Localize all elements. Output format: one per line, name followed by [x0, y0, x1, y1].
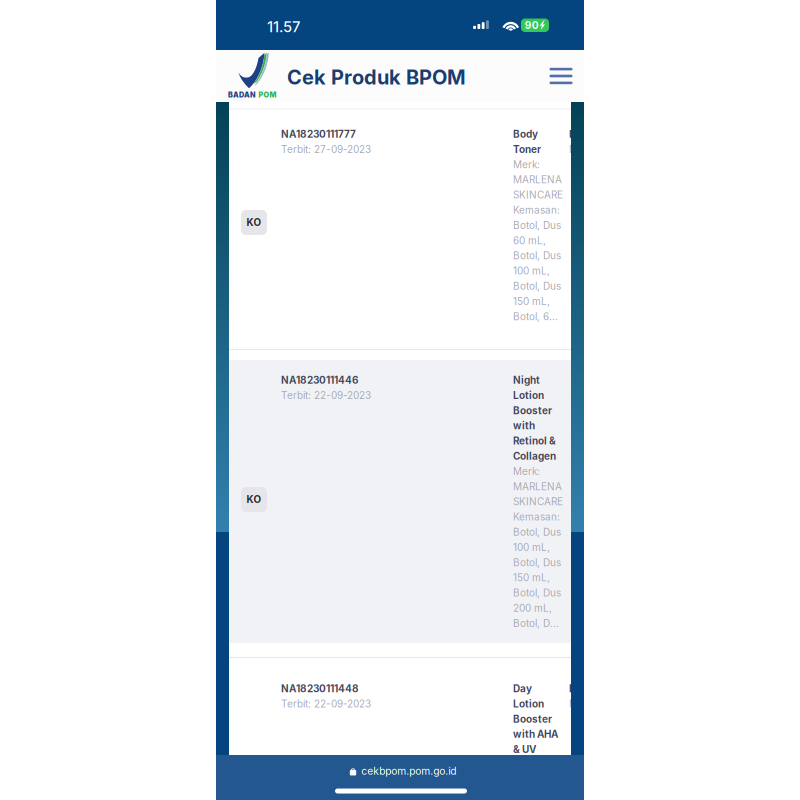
staticText: Kemasan: — [513, 204, 560, 216]
staticText: 200 mL, — [513, 602, 552, 614]
staticText: 150 mL, — [513, 572, 550, 584]
staticText: Retinol & — [513, 435, 556, 447]
staticText: Cek Produk BPOM — [287, 65, 466, 89]
staticText: NA18230111777 — [281, 128, 356, 140]
staticText: MARLENA — [513, 480, 562, 493]
staticText: Botol, Dus — [513, 219, 561, 231]
staticText: NA18230111446 — [281, 374, 358, 386]
staticText: 100 mL, — [513, 265, 550, 277]
staticText: MARLENA — [513, 174, 562, 186]
button[interactable]: Menu — [544, 61, 578, 91]
staticText: SKINCARE — [513, 496, 563, 508]
staticText: 60 mL, — [513, 234, 546, 247]
staticText: Lotion — [513, 698, 544, 710]
staticText: Botol, Dus — [513, 587, 561, 599]
staticText: Botol, 6... — [513, 310, 558, 323]
staticText: Collagen — [513, 450, 556, 462]
staticText: Bedak — [569, 683, 600, 695]
staticText: Botol, D... — [513, 617, 559, 629]
staticText: Terbit: 27-09-2023 — [281, 143, 371, 155]
staticText: BADAN — [228, 90, 256, 99]
staticText: Terbit: 22-09-2023 — [281, 698, 371, 710]
staticText: POM — [259, 90, 277, 99]
staticText: Merk: — [513, 465, 540, 477]
staticText: with AHA — [513, 728, 558, 740]
staticText: Merk: — [569, 698, 596, 710]
staticText: KO — [246, 216, 261, 228]
staticText: Merk: — [569, 143, 596, 155]
button[interactable]: cekbpom.pom.go.id — [347, 761, 459, 781]
staticText: KO — [246, 493, 261, 505]
staticText: Booster — [513, 713, 552, 725]
staticText: Botol, Dus — [513, 280, 561, 292]
staticText: Day — [513, 683, 532, 695]
staticText: 90 — [525, 19, 539, 31]
staticText: Kemasan: — [513, 511, 560, 523]
staticText: Botol, Dus — [513, 250, 561, 262]
staticText: Botol, Dus — [513, 526, 561, 538]
staticText: 100 mL, — [513, 541, 550, 553]
staticText: Toner — [513, 143, 541, 155]
staticText: 150 mL, — [513, 295, 550, 307]
staticText: & UV — [513, 743, 536, 755]
staticText: 11.57 — [267, 18, 300, 36]
staticText: SKINCARE — [513, 189, 563, 201]
staticText: Botol, Dus — [513, 556, 561, 569]
staticText: cekbpom.pom.go.id — [361, 765, 456, 777]
staticText: Merk: — [513, 158, 540, 171]
staticText: NA18230111448 — [281, 683, 359, 695]
staticText: with — [513, 420, 535, 432]
staticText: Night — [513, 374, 540, 386]
staticText: Bedak — [569, 128, 600, 140]
staticText: Lotion — [513, 389, 544, 401]
staticText: Body — [513, 128, 538, 140]
staticText: Booster — [513, 404, 552, 417]
staticText: Terbit: 22-09-2023 — [281, 389, 371, 401]
